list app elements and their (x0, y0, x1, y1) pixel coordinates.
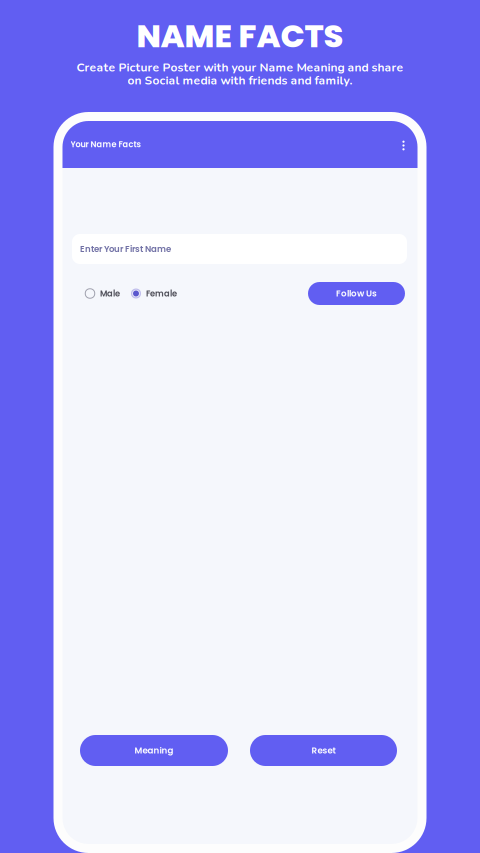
staticText: Male (100, 288, 120, 299)
staticText: Create Picture Poster with your Name Mea… (76, 59, 403, 76)
button[interactable]: Follow Us (308, 282, 405, 305)
button[interactable]: Meaning (80, 735, 228, 766)
staticText: Your Name Facts (70, 139, 140, 150)
button[interactable]: Male (85, 288, 120, 299)
staticText: Meaning (134, 744, 173, 756)
staticText: NAME FACTS (136, 14, 343, 58)
staticText: Follow Us (336, 287, 377, 299)
button[interactable]: Reset (250, 735, 397, 766)
button[interactable]: Female (131, 288, 177, 299)
staticText: Enter Your First Name (80, 243, 171, 255)
staticText: Reset (311, 744, 335, 756)
staticText: on Social media with friends and family. (127, 72, 352, 89)
staticText: Female (146, 288, 177, 299)
button[interactable]: More options (392, 121, 414, 168)
button[interactable]: Enter Your First Name (63, 234, 417, 264)
